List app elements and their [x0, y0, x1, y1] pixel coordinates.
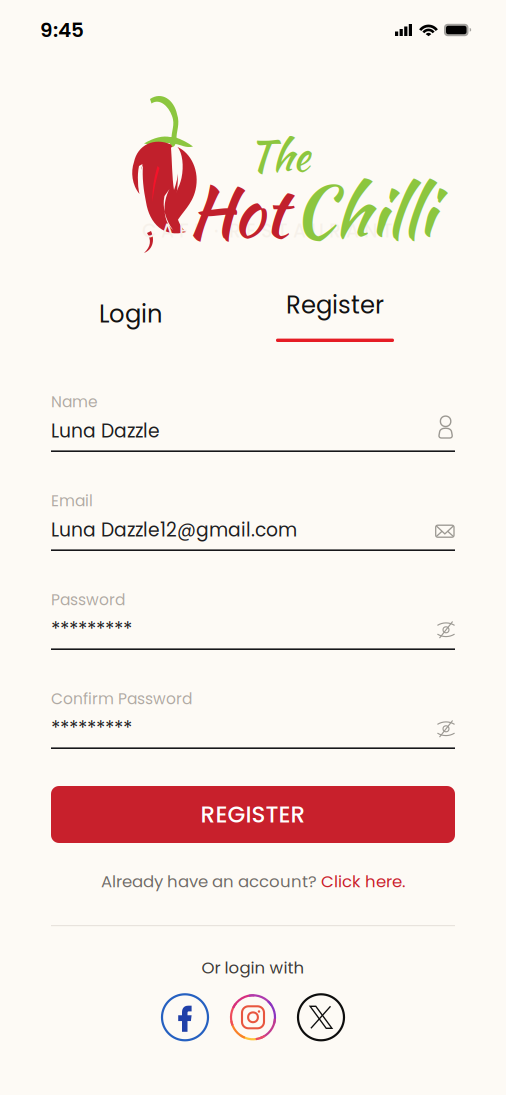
- button[interactable]: Sign in with X: [298, 994, 344, 1040]
- staticText: REGISTER: [200, 798, 305, 831]
- button[interactable]: REGISTER: [51, 786, 455, 843]
- staticText: C A F E · R E S T A U R A N T: [142, 218, 393, 244]
- staticText: Chilli: [293, 161, 434, 262]
- staticText: Or login with: [201, 956, 304, 979]
- staticText: Click here.: [321, 870, 405, 893]
- button[interactable]: Login: [51, 286, 211, 342]
- staticText: Name: [51, 391, 98, 413]
- staticText: The: [248, 126, 310, 186]
- staticText: *********: [51, 715, 132, 742]
- button[interactable]: Sign in with Instagram: [230, 994, 276, 1040]
- button[interactable]: Sign in with Facebook: [162, 994, 208, 1040]
- staticText: Hot: [188, 161, 287, 262]
- staticText: Register: [286, 288, 384, 322]
- staticText: Already have an account?: [101, 870, 321, 893]
- button[interactable]: Click here.: [321, 870, 405, 893]
- staticText: Confirm Password: [51, 688, 192, 710]
- staticText: Luna Dazzle12@gmail.com: [51, 517, 297, 543]
- staticText: Luna Dazzle: [51, 418, 160, 444]
- staticText: 9:45: [40, 16, 84, 44]
- staticText: Email: [51, 490, 93, 512]
- staticText: Password: [51, 589, 125, 611]
- staticText: Login: [99, 297, 163, 331]
- button[interactable]: Register: [255, 286, 415, 342]
- staticText: *********: [51, 616, 132, 643]
